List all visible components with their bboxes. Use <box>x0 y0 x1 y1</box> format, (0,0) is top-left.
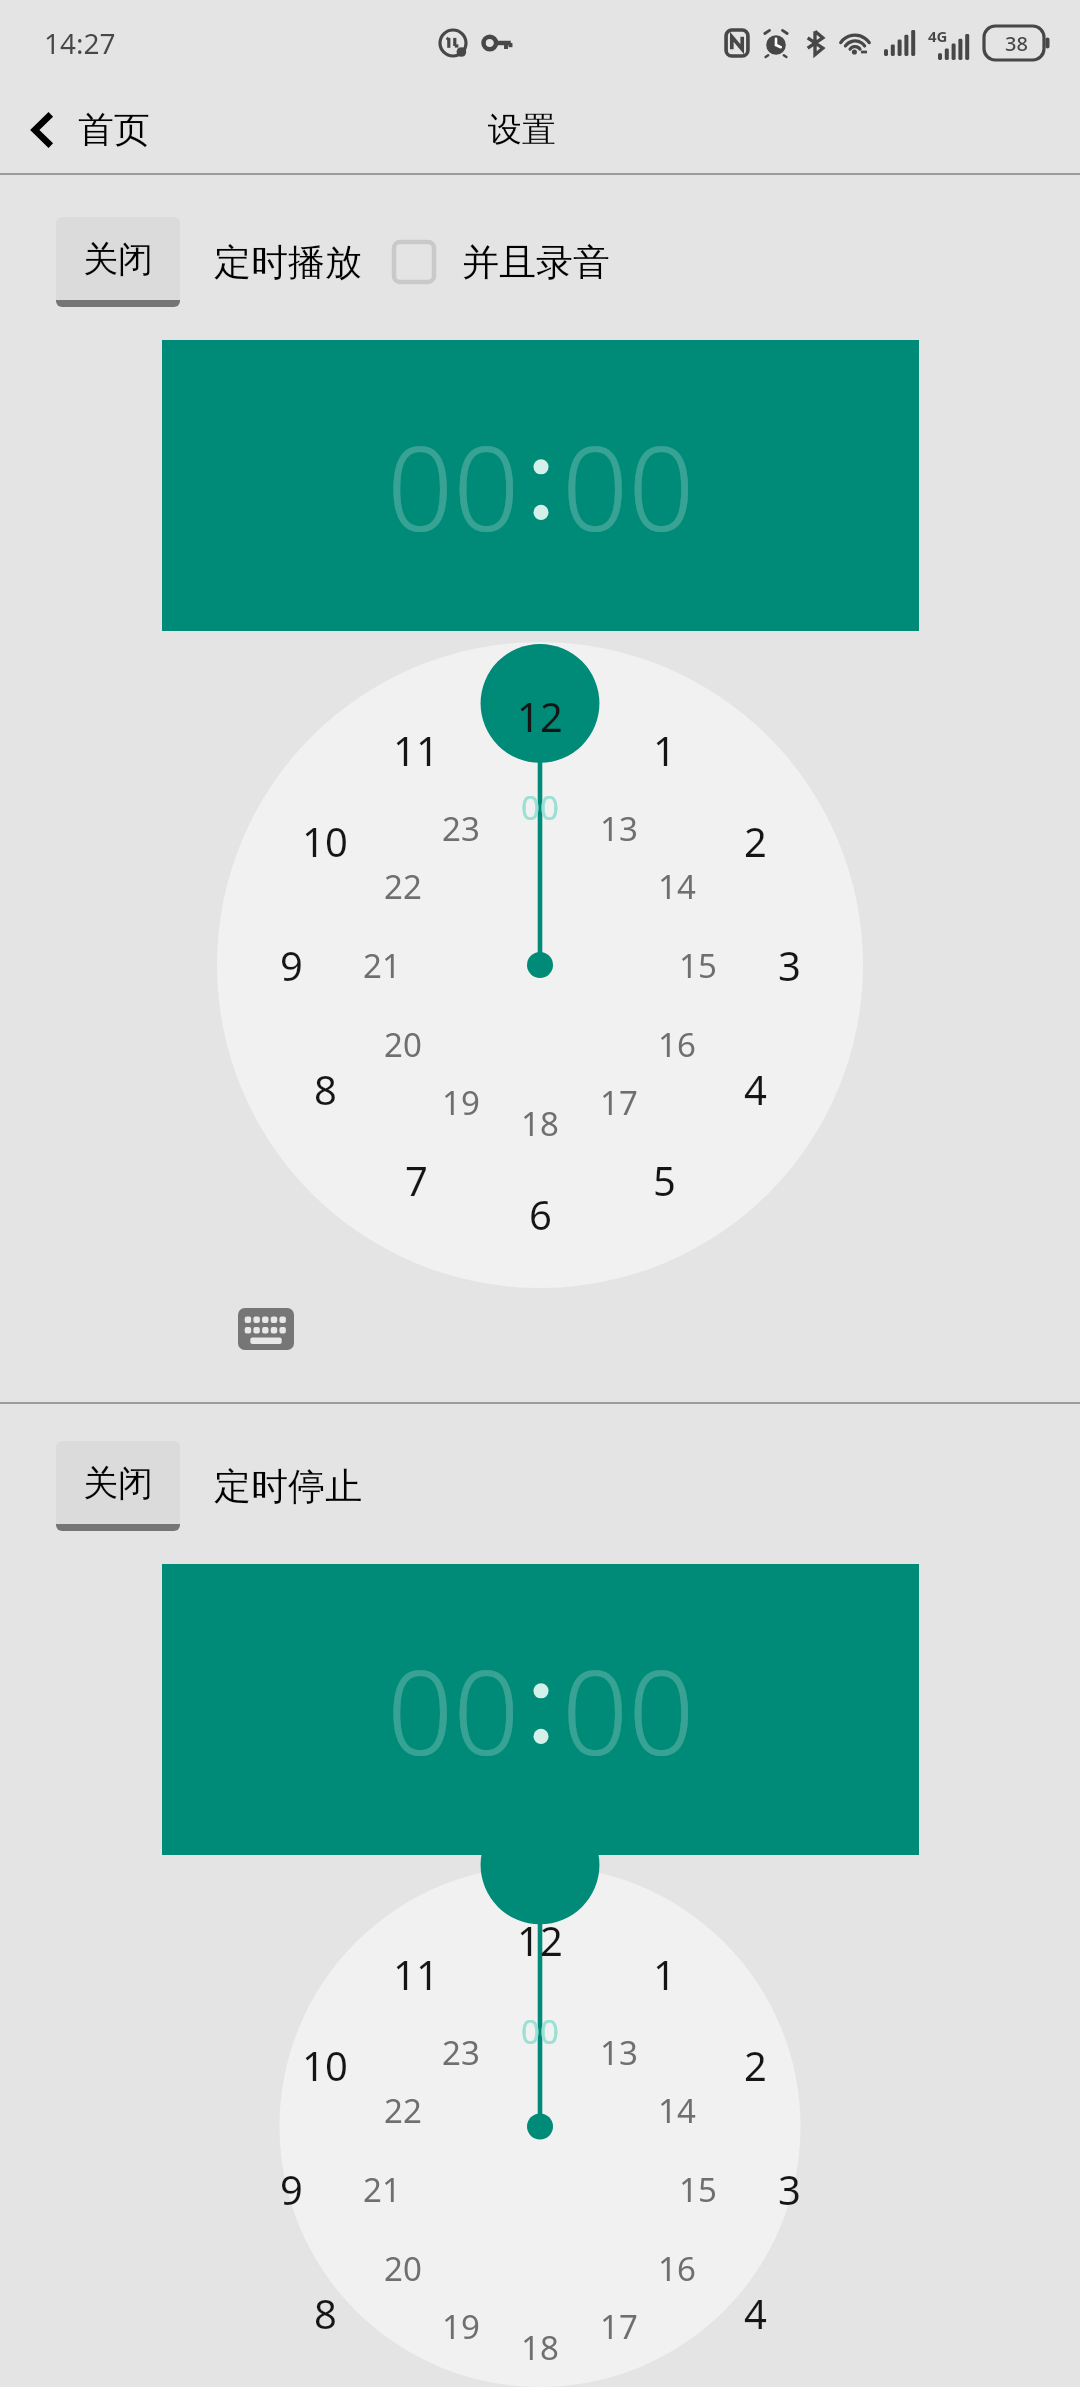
staticText: 定时停止 <box>214 1463 362 1510</box>
button[interactable] <box>390 238 438 286</box>
staticText: 00 <box>387 1631 520 1789</box>
staticText: 13 <box>600 2030 638 2075</box>
staticText: 设置 <box>488 108 556 151</box>
staticText: 22 <box>384 864 422 909</box>
staticText: 00 <box>521 2009 559 2054</box>
staticText: 16 <box>658 2246 696 2291</box>
staticText: 11 <box>393 1947 439 2001</box>
staticText: 12 <box>517 1913 563 1967</box>
staticText: 00 <box>562 407 695 565</box>
staticText: 00 <box>562 1631 695 1789</box>
staticText: 15 <box>679 2167 717 2212</box>
staticText: 12 <box>517 689 563 743</box>
staticText: 2 <box>744 814 767 868</box>
staticText: 4 <box>744 1062 767 1116</box>
staticText: 23 <box>442 2030 480 2075</box>
staticText: 10 <box>302 814 348 868</box>
staticText: 4G <box>928 26 948 46</box>
staticText: 17 <box>600 2304 638 2349</box>
staticText: 并且录音 <box>462 239 610 286</box>
staticText: 14:27 <box>44 24 116 62</box>
staticText: 5 <box>653 1153 676 1207</box>
staticText: 3 <box>778 938 801 992</box>
staticText: 23 <box>442 806 480 851</box>
button[interactable]: 1 <box>217 642 863 1288</box>
staticText: 关闭 <box>83 237 153 281</box>
button[interactable]: 1 <box>217 1866 863 2387</box>
staticText: 21 <box>363 943 401 988</box>
staticText: 8 <box>314 2286 337 2340</box>
staticText: 11 <box>393 723 439 777</box>
other: Back <box>24 112 60 148</box>
staticText: 19 <box>442 1080 480 1125</box>
staticText: 19 <box>442 2304 480 2349</box>
button[interactable]: 00 <box>162 1564 919 1855</box>
staticText: 3 <box>778 2162 801 2216</box>
staticText: 15 <box>679 943 717 988</box>
button[interactable]: 00 <box>162 340 919 631</box>
staticText: 14 <box>658 864 696 909</box>
staticText: 14 <box>658 2088 696 2133</box>
staticText: 定时播放 <box>214 239 362 286</box>
staticText: 16 <box>658 1022 696 1067</box>
staticText: 关闭 <box>83 1461 153 1505</box>
staticText: 00 <box>387 407 520 565</box>
staticText: 13 <box>600 806 638 851</box>
staticText: 20 <box>384 1022 422 1067</box>
staticText: 1 <box>653 1947 676 2001</box>
staticText: 21 <box>363 2167 401 2212</box>
button[interactable]: 关闭 <box>56 217 180 307</box>
staticText: 17 <box>600 1080 638 1125</box>
staticText: 18 <box>521 1101 559 1146</box>
staticText: 38 <box>1005 30 1028 57</box>
staticText: 20 <box>384 2246 422 2291</box>
staticText: 18 <box>521 2325 559 2370</box>
staticText: 9 <box>280 2162 303 2216</box>
staticText: 22 <box>384 2088 422 2133</box>
staticText: 00 <box>521 785 559 830</box>
staticText: 6 <box>529 1187 552 1241</box>
staticText: 4 <box>744 2286 767 2340</box>
button[interactable]: Back <box>0 99 170 160</box>
staticText: 7 <box>405 1153 428 1207</box>
staticText: 2 <box>744 2038 767 2092</box>
staticText: 1 <box>653 723 676 777</box>
staticText: 9 <box>280 938 303 992</box>
staticText: 首页 <box>78 107 150 152</box>
staticText: 8 <box>314 1062 337 1116</box>
staticText: 10 <box>302 2038 348 2092</box>
button[interactable]: Switch to keyboard input <box>232 1302 300 1356</box>
button[interactable]: 关闭 <box>56 1441 180 1531</box>
